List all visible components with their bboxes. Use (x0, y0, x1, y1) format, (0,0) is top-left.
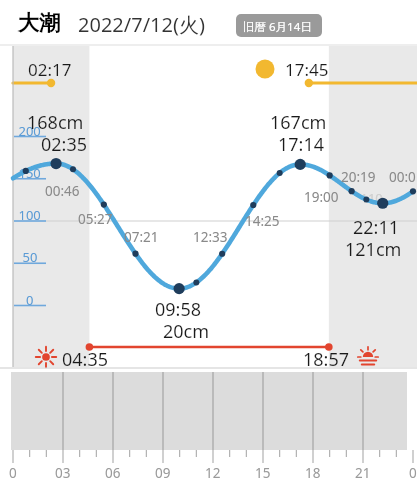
button[interactable]: Tide chart for 2022/7/12 (0, 0, 417, 480)
